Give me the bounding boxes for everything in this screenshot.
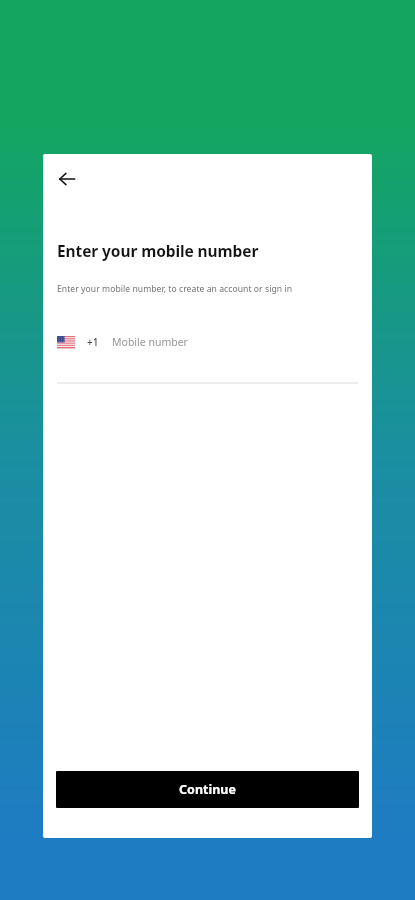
staticText: Continue [179, 781, 236, 798]
button[interactable]: Continue [56, 771, 359, 808]
staticText: +1 [87, 335, 99, 349]
button[interactable]: +1 [57, 329, 358, 355]
button[interactable]: Back [52, 164, 82, 194]
staticText: Mobile number [112, 335, 188, 349]
staticText: Enter your mobile number [57, 240, 259, 261]
staticText: Enter your mobile number, to create an a… [57, 283, 293, 295]
